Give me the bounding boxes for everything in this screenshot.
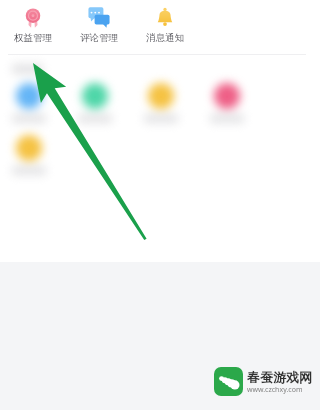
button[interactable]: 消息通知 (132, 0, 198, 54)
button[interactable]: 权益管理 (0, 0, 66, 54)
staticText: www.czchxy.com (247, 385, 303, 395)
staticText: 消息通知 (146, 32, 184, 44)
staticText: 评论管理 (80, 32, 118, 44)
button[interactable]: 评论管理 (66, 0, 132, 54)
staticText: 权益管理 (14, 32, 52, 44)
staticText: 春蚕游戏网 (247, 369, 312, 385)
